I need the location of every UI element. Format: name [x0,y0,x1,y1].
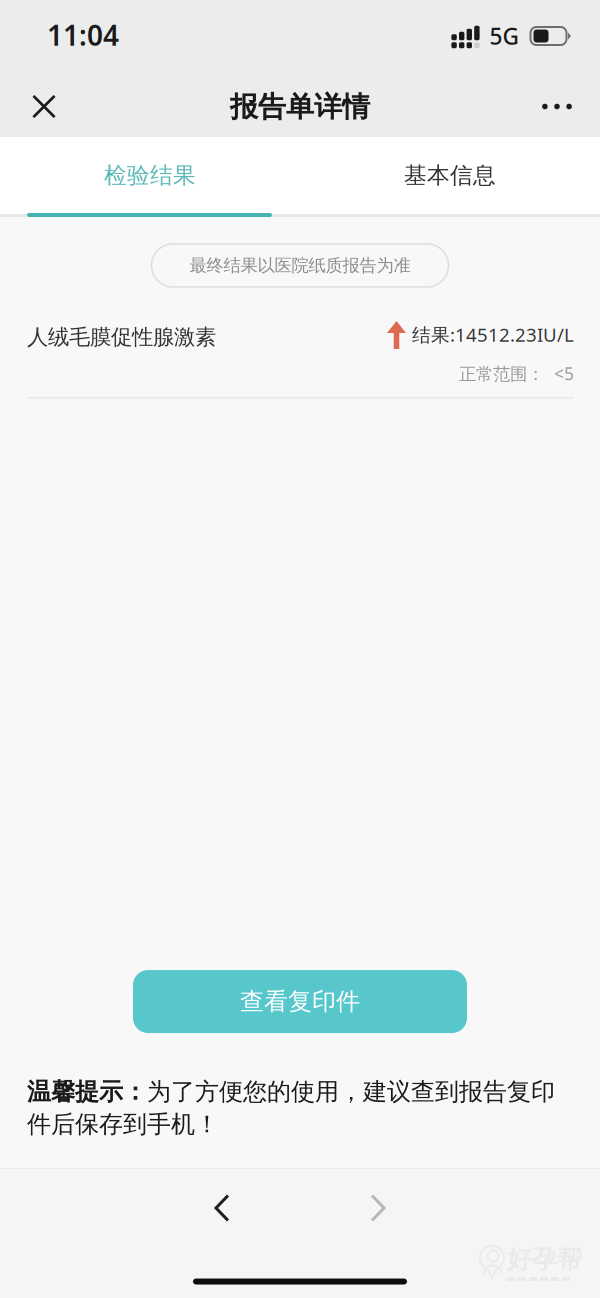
staticText: 最终结果以医院纸质报告为准 [189,255,410,276]
staticText: 基本信息 [404,162,496,189]
button[interactable]: 查看复印件 [133,970,467,1033]
staticText: 好孕帮 [507,1244,582,1275]
button[interactable]: Forward [339,1179,417,1237]
staticText: 5G [489,21,518,51]
button[interactable]: 基本信息 [300,137,600,214]
staticText: 查看复印件 [240,987,360,1016]
staticText: 结果:14512.23IU/L [412,322,574,347]
staticText: 正常范围： <5 [459,362,574,385]
staticText: 报告单详情 [230,90,370,124]
staticText: 人绒毛膜促性腺激素 [27,324,216,350]
button[interactable]: Back [183,1179,261,1237]
staticText: 11:04 [47,16,119,54]
staticText: 温馨提示：为了方便您的使用，建议查到报告复印件后保存到手机！ [27,1077,555,1139]
button[interactable]: More options [529,77,585,135]
button[interactable]: Close [16,77,72,135]
staticText: 检验结果 [104,162,196,189]
button[interactable]: 检验结果 [0,137,300,214]
